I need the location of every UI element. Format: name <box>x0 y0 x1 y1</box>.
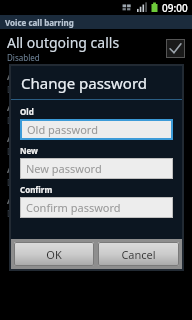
button[interactable]: Confirm password <box>21 198 172 217</box>
staticText: Disabled <box>7 177 40 188</box>
button[interactable]: OK <box>14 242 94 266</box>
staticText: Confirm password <box>26 200 121 215</box>
staticText: Old <box>20 106 34 117</box>
button[interactable]: All outgoing calls <box>0 127 192 158</box>
button[interactable]: All outgoing calls <box>0 158 192 189</box>
button[interactable]: Old password <box>22 121 171 138</box>
staticText: Disabled <box>7 84 40 95</box>
staticText: All outgoing calls <box>7 128 112 146</box>
button[interactable]: New password <box>21 159 172 178</box>
button[interactable]: Cancel <box>98 242 179 266</box>
staticText: Disabled <box>7 208 40 219</box>
staticText: New <box>20 145 38 156</box>
staticText: 09:00 <box>162 1 188 15</box>
button[interactable]: All outgoing calls <box>0 65 192 96</box>
staticText: Change password <box>21 73 148 93</box>
staticText: All outgoing calls <box>7 66 112 84</box>
staticText: All outgoing calls <box>7 159 112 177</box>
staticText: Disabled <box>7 52 40 63</box>
staticText: Confirm <box>20 184 53 195</box>
staticText: Old password <box>27 122 98 137</box>
staticText: OK <box>46 247 62 262</box>
button[interactable]: All outgoing calls <box>0 96 192 127</box>
staticText: Disabled <box>7 146 40 157</box>
button[interactable]: All outgoing calls <box>0 31 192 65</box>
staticText: All outgoing calls <box>7 33 120 52</box>
button[interactable]: All outgoing calls <box>0 189 192 220</box>
staticText: Voice call barring <box>5 17 74 28</box>
staticText: New password <box>26 161 102 176</box>
staticText: All outgoing calls <box>7 190 112 208</box>
staticText: Disabled <box>7 115 40 126</box>
staticText: All outgoing calls <box>7 97 112 115</box>
staticText: Cancel <box>121 247 156 262</box>
